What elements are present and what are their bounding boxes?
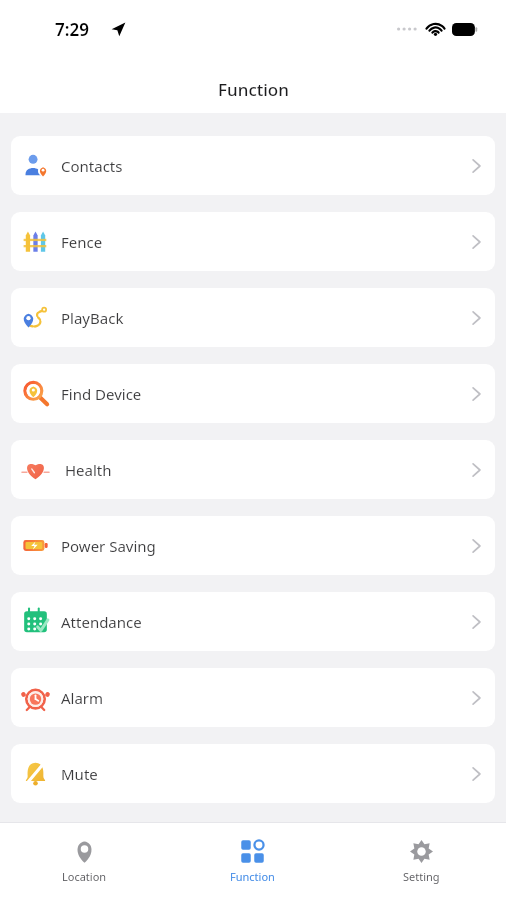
staticText: Power Saving [61,536,156,556]
staticText: 7:29 [55,18,89,41]
button[interactable]: Alarm [11,668,495,727]
button[interactable]: Health [11,440,495,499]
staticText: Attendance [61,612,142,632]
staticText: Fence [61,232,103,252]
button[interactable]: Contacts [11,136,495,195]
staticText: Mute [61,764,98,784]
staticText: Function [230,869,275,884]
staticText: Setting [403,869,440,884]
button[interactable]: PlayBack [11,288,495,347]
button[interactable]: Mute [11,744,495,803]
button[interactable]: Power Saving [11,516,495,575]
staticText: Health [65,460,112,480]
button[interactable]: Fence [11,212,495,271]
button[interactable]: Setting [337,822,506,900]
button[interactable]: Find Device [11,364,495,423]
staticText: PlayBack [61,308,124,328]
staticText: Contacts [61,156,123,176]
staticText: Alarm [61,688,104,708]
button[interactable]: Location [0,822,168,900]
staticText: Location [62,869,107,884]
button[interactable]: Function [168,822,337,900]
staticText: Find Device [61,384,142,404]
button[interactable]: Attendance [11,592,495,651]
staticText: Function [218,78,289,101]
